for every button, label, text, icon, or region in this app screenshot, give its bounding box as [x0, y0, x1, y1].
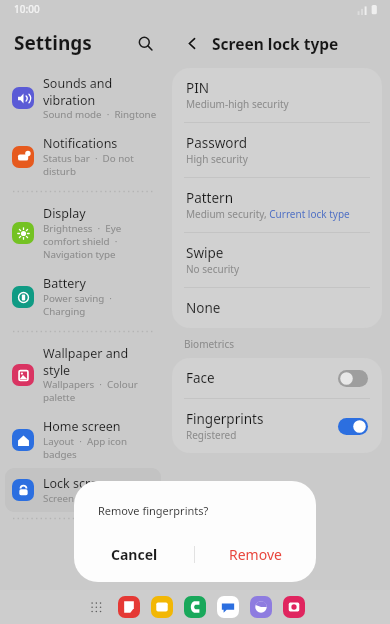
button[interactable]: Swipe	[172, 233, 382, 287]
staticText: Fingerprints	[186, 410, 264, 428]
staticText: Home screen	[43, 418, 121, 435]
staticText: Layout · App icon badges	[43, 435, 157, 461]
staticText: Remove fingerprints?	[98, 503, 209, 518]
button[interactable]: Pattern	[172, 178, 382, 232]
button[interactable]: Cancel	[74, 532, 194, 576]
staticText: Password	[186, 134, 248, 152]
button[interactable]: Battery	[5, 268, 161, 325]
button[interactable]: Camera	[283, 596, 305, 618]
staticText: Swipe	[186, 244, 224, 262]
staticText: Sound mode · Ringtone	[43, 108, 157, 121]
staticText: Lock screen	[43, 475, 112, 492]
staticText: Wallpaper and style	[43, 345, 157, 378]
button[interactable]: Remove	[195, 532, 316, 576]
staticText: Screen lock type	[43, 492, 118, 505]
button[interactable]: Messages	[217, 596, 239, 618]
staticText: Medium security, Current lock type	[186, 207, 350, 221]
button[interactable]: Face	[172, 358, 382, 398]
button[interactable]: None	[172, 288, 382, 328]
staticText: Face	[186, 369, 215, 387]
button[interactable]: Wallpaper and style	[5, 338, 161, 411]
staticText: PIN	[186, 79, 210, 97]
staticText: Medium-high security	[186, 97, 289, 111]
staticText: High security	[186, 152, 248, 166]
staticText: Cancel	[111, 545, 158, 564]
button[interactable]: Display	[5, 198, 161, 268]
staticText: None	[186, 299, 221, 317]
staticText: Remove	[229, 545, 282, 564]
button[interactable]: PIN	[172, 68, 382, 122]
staticText: Display	[43, 205, 86, 222]
staticText: 10:00	[14, 2, 40, 16]
staticText: Notifications	[43, 135, 118, 152]
button[interactable]: Password	[172, 123, 382, 177]
button[interactable]: Files	[151, 596, 173, 618]
staticText: No security	[186, 262, 240, 276]
staticText: Settings	[14, 30, 92, 56]
staticText: Biometrics	[184, 337, 235, 351]
staticText: Brightness · Eye comfort shield · Naviga…	[43, 222, 157, 261]
button[interactable]: Fingerprints	[172, 399, 382, 453]
button[interactable]: Lock screen	[5, 468, 161, 512]
staticText: Registered	[186, 428, 237, 442]
button[interactable]: Notes	[118, 596, 140, 618]
button[interactable]: Phone	[184, 596, 206, 618]
button[interactable]: Home screen	[5, 411, 161, 468]
staticText: Power saving · Charging	[43, 292, 157, 318]
staticText: Status bar · Do not disturb	[43, 152, 157, 178]
staticText: Battery	[43, 275, 86, 292]
button[interactable]: Internet	[250, 596, 272, 618]
staticText: Screen lock type	[212, 33, 339, 54]
staticText: Sounds and vibration	[43, 75, 157, 108]
staticText: Pattern	[186, 189, 234, 207]
button[interactable]: Sounds and vibration	[5, 68, 161, 128]
button[interactable]: Back	[180, 31, 204, 55]
button[interactable]: All apps	[85, 596, 107, 618]
staticText: Wallpapers · Colour palette	[43, 378, 157, 404]
button[interactable]: Search	[130, 28, 160, 58]
button[interactable]: Notifications	[5, 128, 161, 185]
